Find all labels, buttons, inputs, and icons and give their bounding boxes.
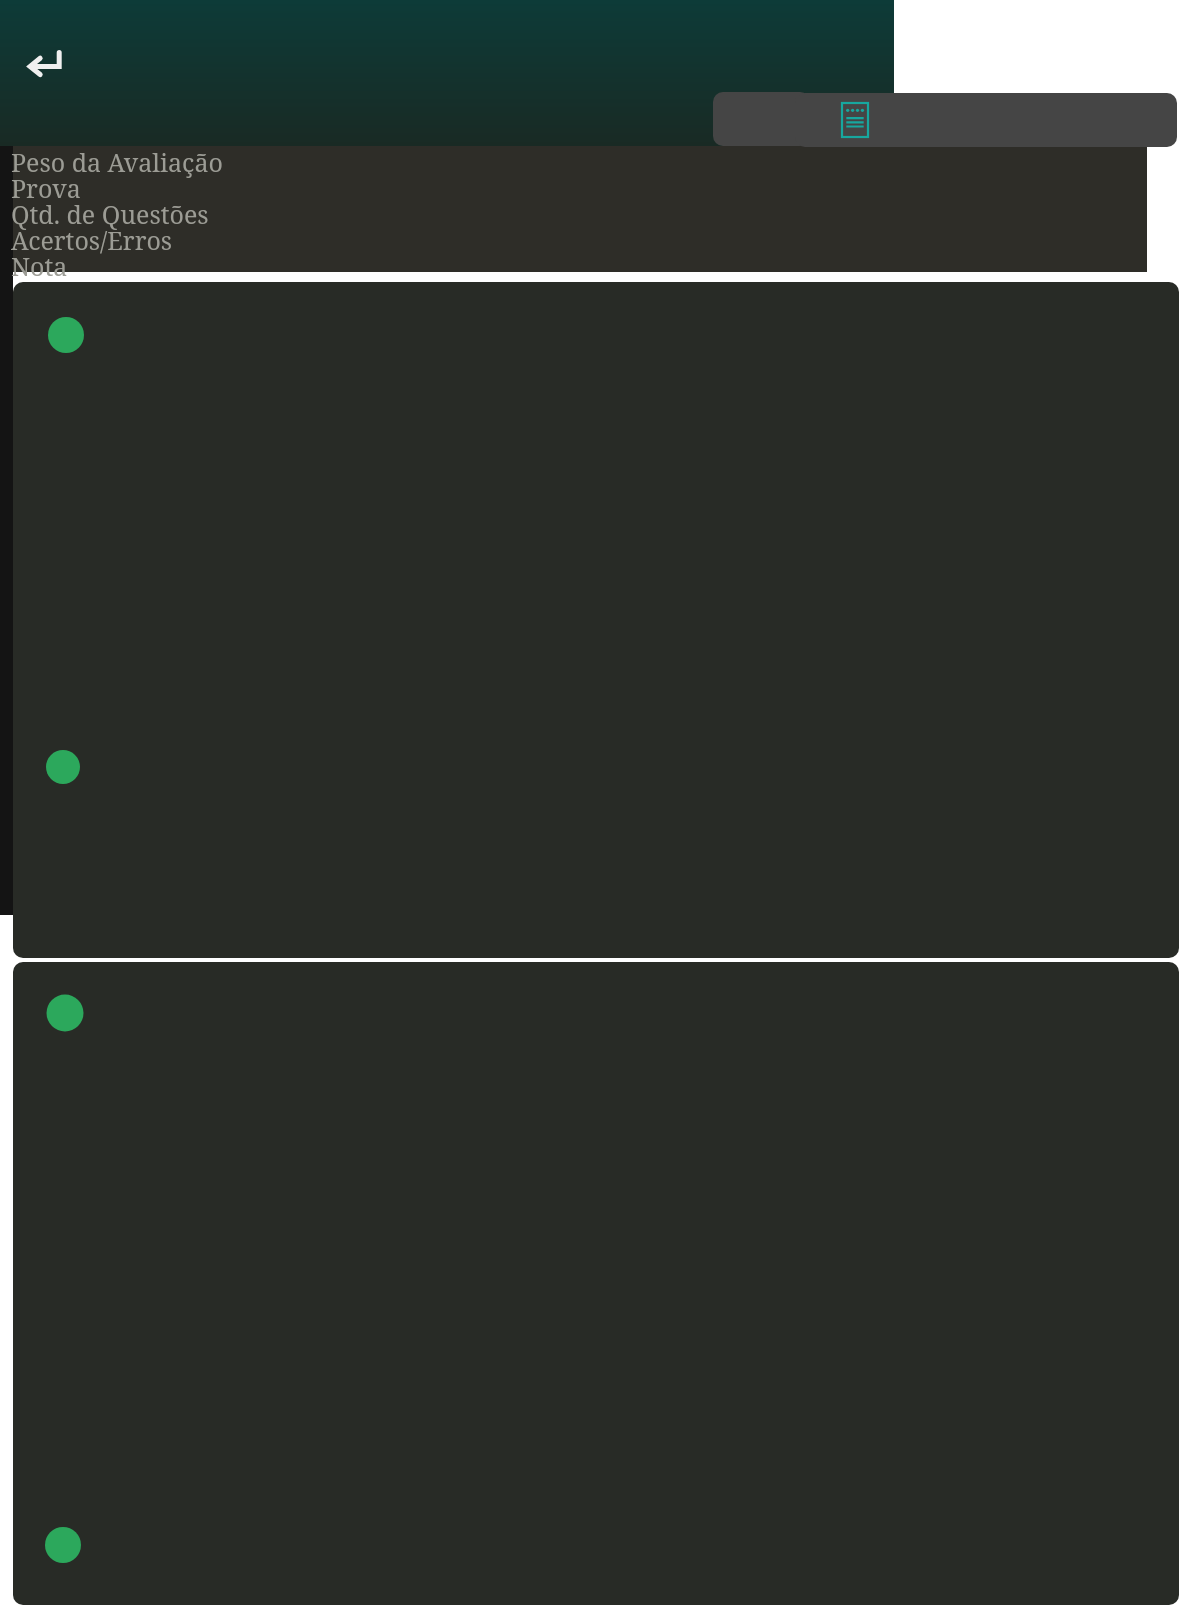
staticText: Qtd. de Questões <box>11 197 209 231</box>
staticText: Acertos/Erros <box>11 223 173 257</box>
staticText: Peso da Avaliação <box>11 145 223 179</box>
button[interactable]: Voltar <box>20 40 76 88</box>
button[interactable]: Filtro <box>713 92 810 146</box>
staticText: Nota <box>11 249 68 283</box>
button[interactable] <box>13 282 1179 958</box>
staticText: Prova <box>11 171 81 205</box>
button[interactable] <box>13 962 1179 1605</box>
button[interactable]: Gabarito da prova <box>795 93 1177 147</box>
